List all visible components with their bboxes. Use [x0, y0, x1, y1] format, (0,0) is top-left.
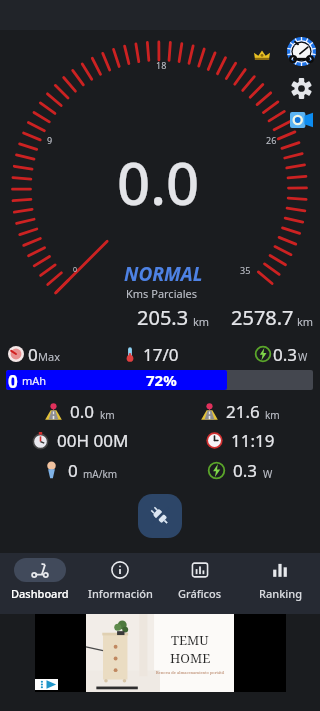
staticText: 17/0 [143, 343, 179, 365]
button[interactable]: Connect [138, 494, 182, 538]
staticText: 26 [266, 134, 277, 146]
staticText: 0 [28, 343, 38, 365]
button[interactable]: Speedometer [287, 37, 316, 66]
staticText: 21.6 [226, 400, 260, 423]
staticText: 0 [68, 459, 78, 482]
staticText: 11:19 [231, 429, 275, 452]
button[interactable]: Settings [291, 78, 312, 99]
button[interactable]: TEMU [35, 614, 286, 692]
staticText: Ranking [259, 586, 302, 601]
staticText: 0.3 [273, 343, 298, 365]
staticText: 72% [146, 370, 177, 390]
button[interactable]: Ranking [240, 553, 320, 614]
staticText: mA/km [83, 467, 118, 481]
staticText: 0.0 [117, 143, 200, 222]
staticText: W [298, 350, 308, 364]
button[interactable]: Dashboard [0, 553, 80, 614]
staticText: 18 [156, 59, 167, 71]
staticText: Renova de almacenamiento portátil [156, 670, 225, 675]
staticText: Dashboard [11, 586, 69, 601]
staticText: 2578.7 [231, 304, 294, 331]
staticText: km [100, 408, 115, 422]
staticText: 0 [73, 265, 78, 275]
staticText: Max [38, 349, 60, 364]
staticText: 0.0 [70, 400, 95, 423]
staticText: km [297, 314, 314, 329]
staticText: km [265, 408, 280, 422]
button[interactable]: Información [80, 553, 160, 614]
staticText: 35 [240, 264, 251, 276]
staticText: 0.3 [233, 459, 258, 482]
staticText: km [193, 314, 210, 329]
button[interactable]: Gráficos [160, 553, 240, 614]
staticText: Gráficos [178, 586, 222, 601]
staticText: Kms Parciales [126, 286, 197, 301]
staticText: 205.3 [137, 304, 189, 331]
staticText: 00H 00M [57, 429, 129, 452]
staticText: mAh [22, 373, 47, 388]
staticText: NORMAL [124, 261, 203, 287]
staticText: 0 [8, 370, 18, 390]
button[interactable]: Record video [290, 112, 313, 128]
staticText: W [263, 467, 273, 481]
staticText: Información [88, 586, 153, 601]
button[interactable]: 0 [6, 370, 313, 390]
staticText: 9 [47, 134, 53, 146]
staticText: HOME [170, 649, 211, 667]
staticText: TEMU [171, 631, 209, 649]
